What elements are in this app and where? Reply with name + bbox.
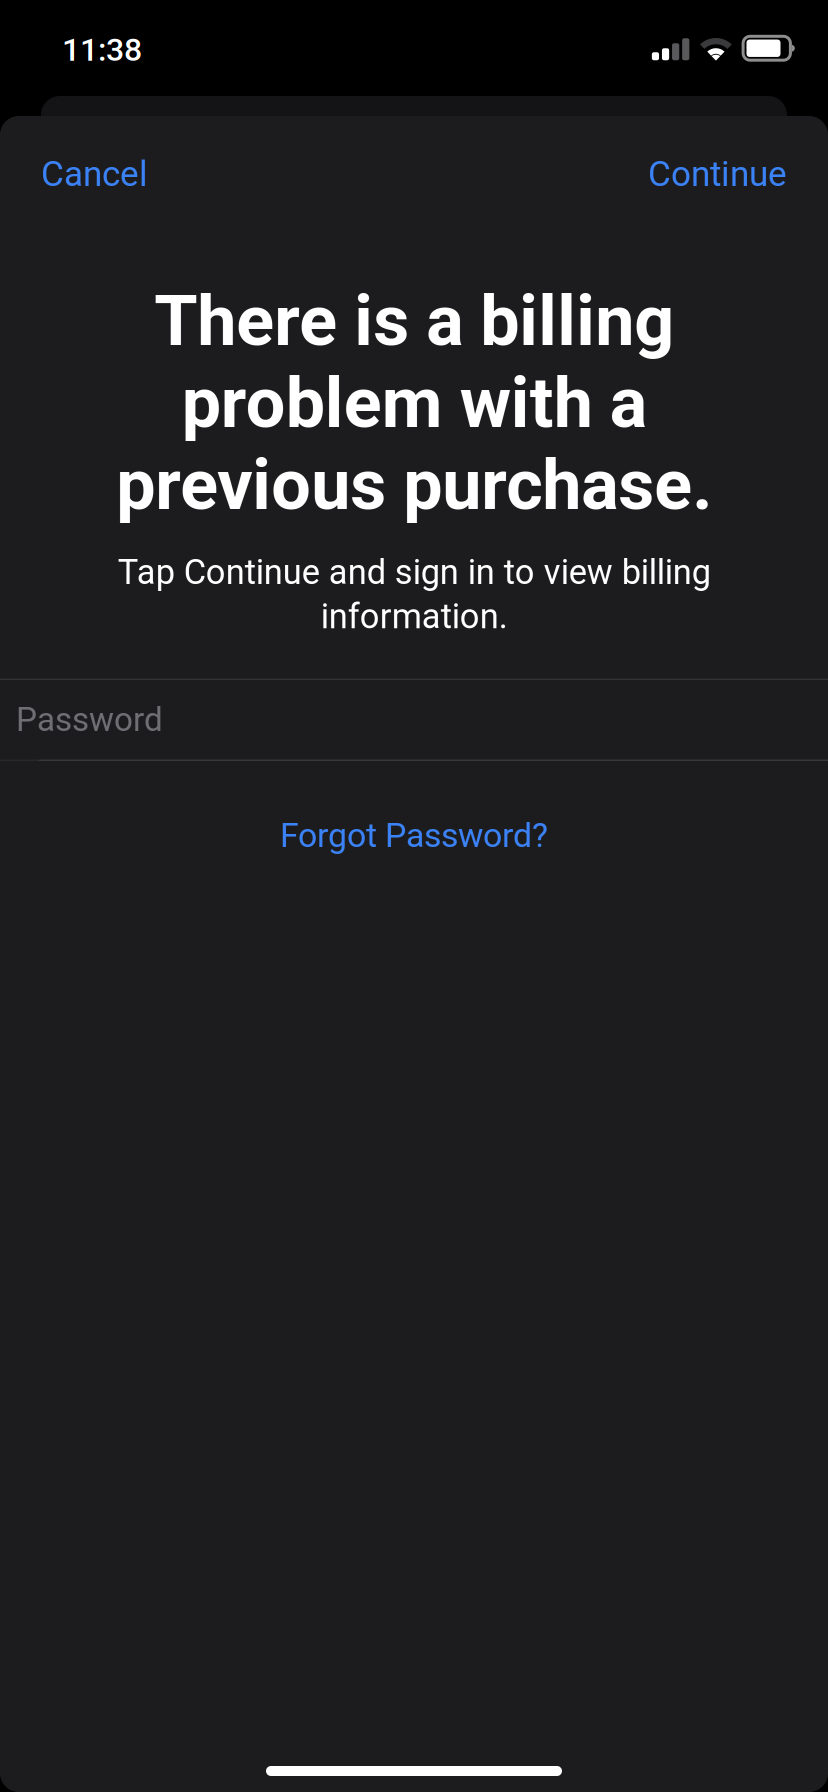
staticText: Tap Continue and sign in to view billing…	[117, 552, 710, 637]
staticText: Password	[16, 700, 163, 739]
staticText: Forgot Password?	[280, 816, 548, 855]
button[interactable]: Forgot Password?	[250, 798, 578, 873]
staticText: 11:38	[62, 31, 142, 68]
button[interactable]: Password	[0, 679, 828, 761]
staticText: There is a billing problem with a previo…	[116, 280, 712, 526]
button[interactable]: Continue	[628, 133, 787, 208]
staticText: Cancel	[41, 153, 148, 194]
staticText: Continue	[648, 153, 787, 194]
button[interactable]: Cancel	[41, 133, 168, 208]
